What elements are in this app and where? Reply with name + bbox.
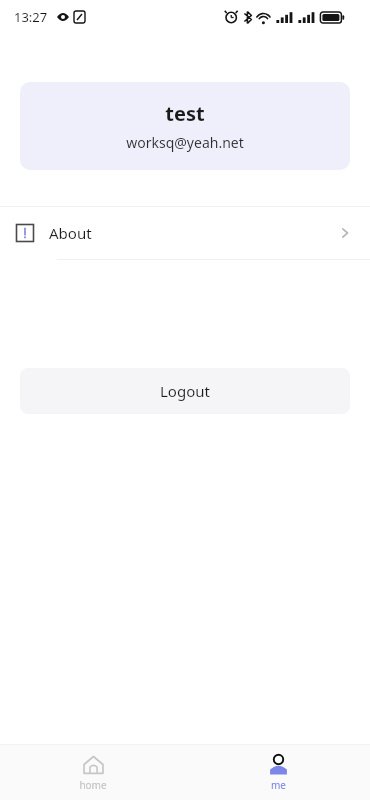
- staticText: About: [49, 223, 92, 243]
- button[interactable]: home: [53, 749, 133, 797]
- staticText: worksq@yeah.net: [126, 133, 244, 152]
- staticText: Logout: [160, 381, 210, 401]
- button[interactable]: me: [238, 749, 318, 797]
- staticText: test: [165, 100, 205, 127]
- button[interactable]: test: [20, 82, 350, 170]
- staticText: 13:27: [14, 8, 48, 26]
- other: Open About: [338, 226, 352, 240]
- staticText: home: [79, 778, 107, 792]
- button[interactable]: About: [0, 207, 370, 259]
- button[interactable]: Logout: [20, 368, 350, 414]
- staticText: me: [271, 778, 286, 792]
